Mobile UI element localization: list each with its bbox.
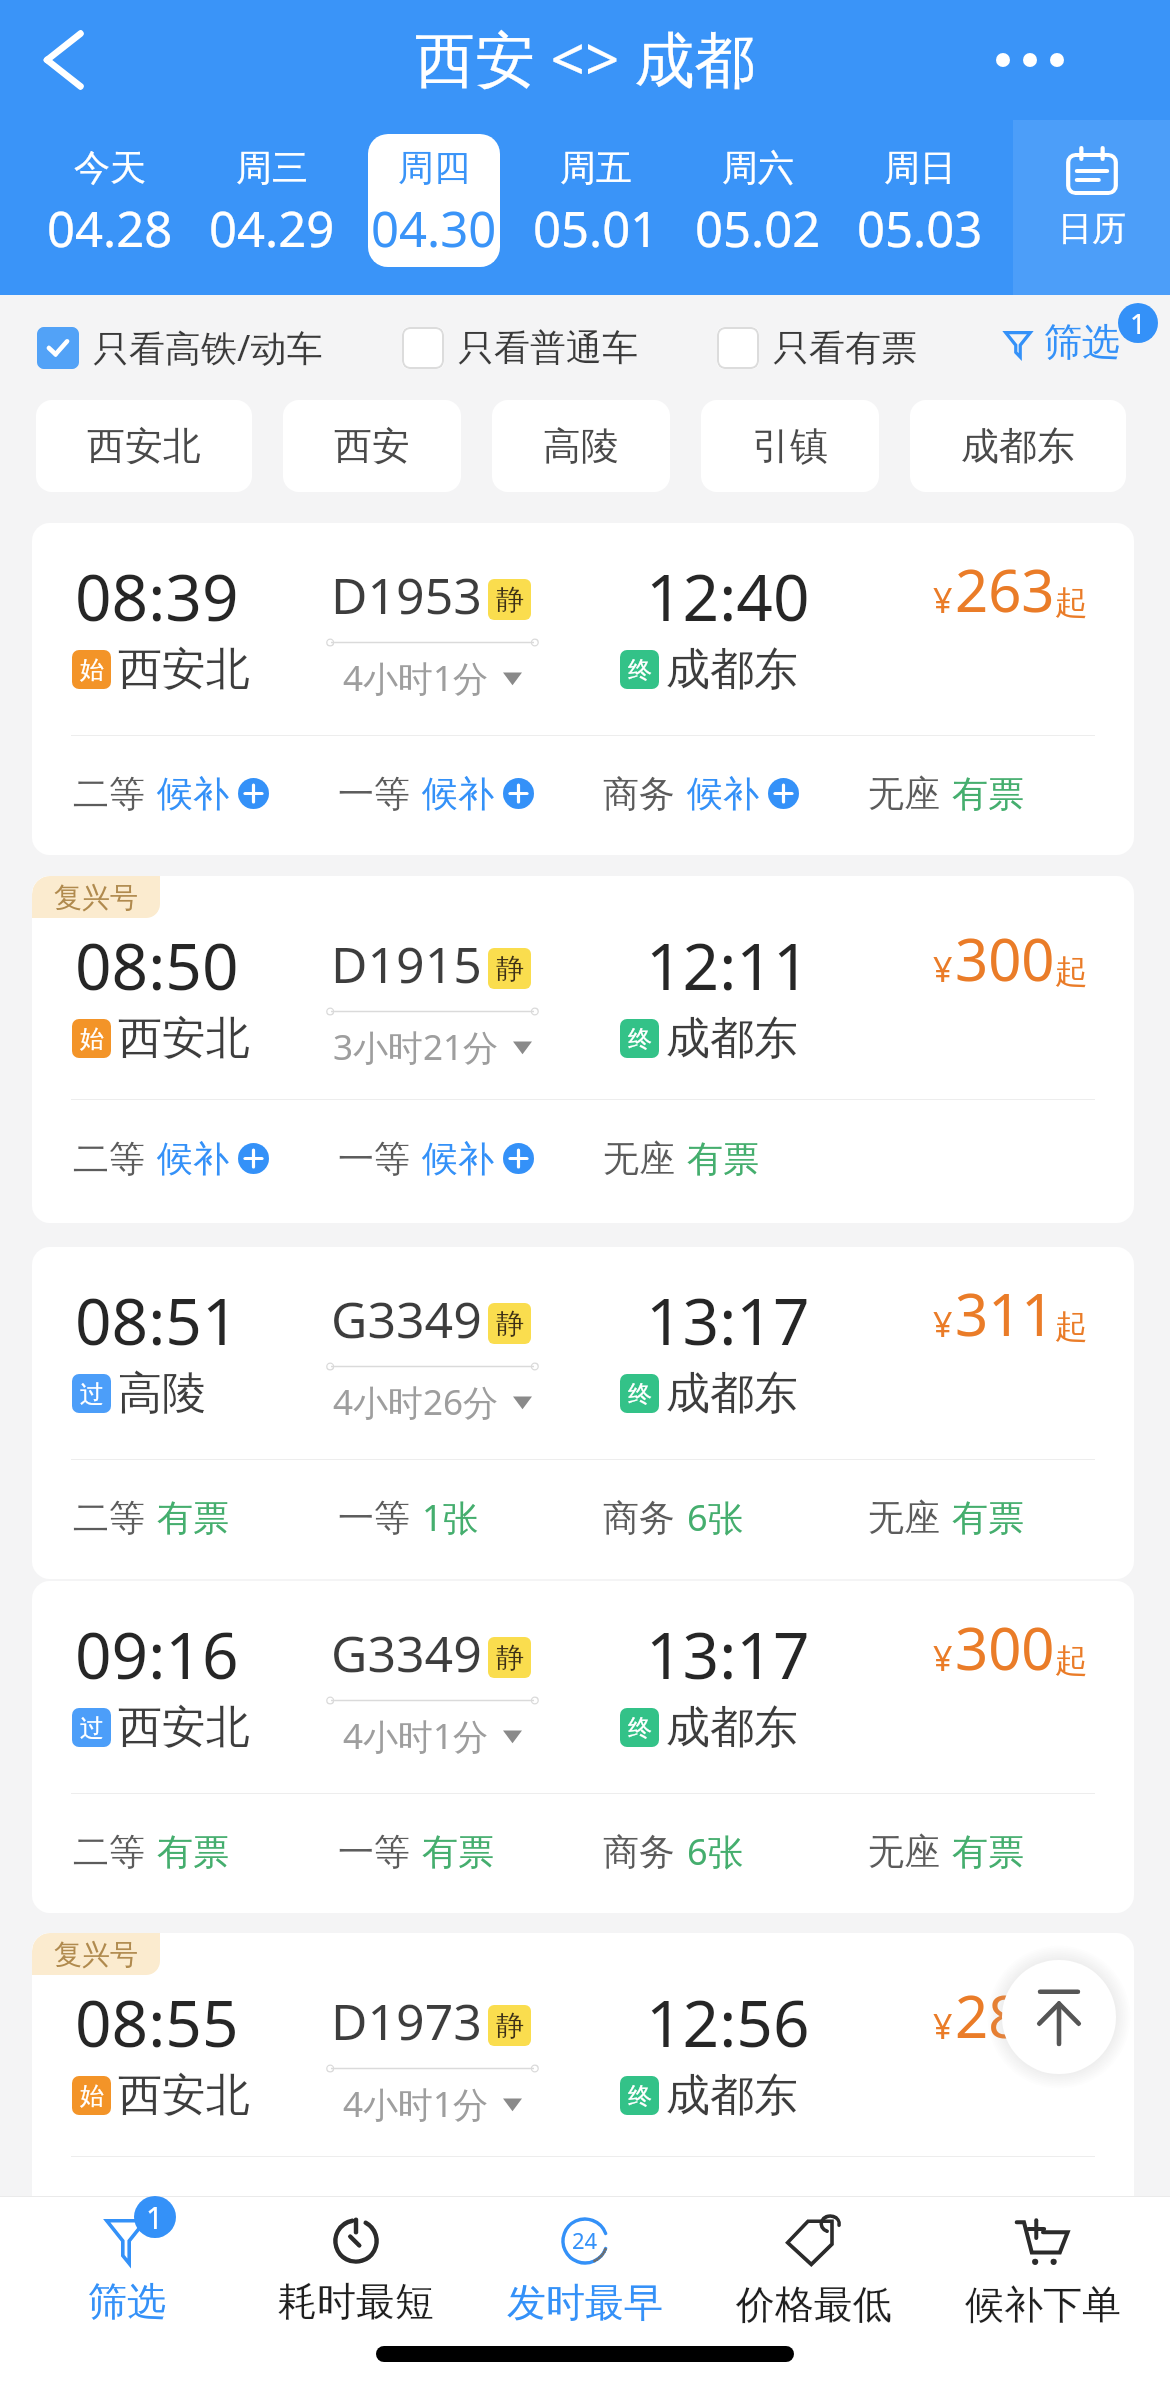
button[interactable]: Add waitlist order — [238, 1143, 269, 1174]
staticText: 候补 — [422, 771, 494, 816]
staticText: 起 — [1055, 1640, 1088, 1682]
staticText: 有票 — [687, 2193, 759, 2238]
staticText: 一等 — [338, 1495, 410, 1540]
staticText: 1 — [1130, 304, 1147, 342]
button[interactable]: 周六 — [692, 134, 824, 267]
button[interactable]: 1 — [13, 2197, 241, 2346]
staticText: 4小时26分 — [333, 1378, 499, 1426]
staticText: 300 — [955, 919, 1055, 998]
staticText: 263 — [955, 550, 1055, 629]
staticText: 4小时1分 — [343, 1712, 489, 1760]
staticText: 成都东 — [961, 422, 1075, 470]
button[interactable]: 周五 — [530, 134, 662, 267]
staticText: 成都东 — [666, 1366, 798, 1421]
staticText: 终 — [628, 1024, 652, 1054]
staticText: 西安北 — [118, 2068, 250, 2123]
button[interactable]: 高陵 — [492, 400, 670, 492]
staticText: 起 — [1055, 2008, 1088, 2050]
staticText: 商务 — [603, 771, 675, 816]
button[interactable]: Calendar — [1013, 120, 1170, 295]
button[interactable]: Add waitlist order — [238, 778, 269, 809]
button[interactable]: 西安北 — [36, 400, 252, 492]
staticText: 静 — [496, 1306, 524, 1341]
button[interactable]: 24 — [470, 2197, 699, 2346]
button[interactable]: 引镇 — [701, 400, 879, 492]
staticText: 西安北 — [118, 1700, 250, 1755]
staticText: 起 — [1055, 582, 1088, 624]
staticText: 3小时21分 — [333, 1023, 499, 1071]
staticText: 候补 — [422, 1136, 494, 1181]
staticText: 候补 — [687, 771, 759, 816]
button[interactable]: 候补下单 — [928, 2197, 1157, 2346]
button[interactable]: 周四 — [368, 134, 500, 267]
staticText: 过 — [80, 1713, 104, 1743]
staticText: 发时最早 — [507, 2278, 663, 2327]
button[interactable]: More options — [982, 12, 1078, 108]
staticText: 08:50 — [75, 922, 239, 1009]
staticText: 有票 — [687, 1136, 759, 1181]
staticText: 4小时1分 — [343, 2080, 489, 2128]
button[interactable]: Back — [14, 12, 110, 108]
staticText: 引镇 — [752, 422, 828, 470]
button[interactable]: 耗时最短 — [241, 2197, 470, 2346]
button[interactable]: 价格最低 — [699, 2197, 928, 2346]
staticText: 日历 — [1058, 207, 1126, 250]
staticText: 价格最低 — [736, 2280, 892, 2329]
staticText: 过 — [80, 1379, 104, 1409]
staticText: 候补 — [422, 2193, 494, 2238]
staticText: ¥ — [933, 2003, 953, 2049]
staticText: 13:17 — [646, 1277, 810, 1364]
button[interactable]: 成都东 — [910, 400, 1126, 492]
staticText: 周六 — [722, 145, 794, 190]
button[interactable]: 复兴号 — [32, 876, 1134, 1223]
button[interactable]: 今天 — [44, 134, 176, 267]
staticText: 商务 — [603, 1495, 675, 1540]
staticText: 无座 — [868, 1495, 940, 1540]
staticText: 有票 — [422, 1829, 494, 1874]
staticText: 无座 — [603, 1136, 675, 1181]
staticText: 筛选 — [88, 2277, 166, 2326]
staticText: 08:51 — [75, 1277, 239, 1364]
staticText: 4小时1分 — [343, 654, 489, 702]
staticText: 二等 — [73, 2193, 145, 2238]
staticText: 08:39 — [75, 553, 239, 640]
button[interactable]: 筛选 — [1004, 324, 1120, 372]
staticText: 复兴号 — [54, 880, 138, 915]
staticText: 二等 — [73, 1829, 145, 1874]
staticText: ¥ — [933, 946, 953, 992]
button[interactable]: Add waitlist order — [503, 1143, 534, 1174]
staticText: 12:11 — [646, 922, 810, 1009]
staticText: 一等 — [338, 2193, 410, 2238]
staticText: 静 — [496, 951, 524, 986]
button[interactable]: Add waitlist order — [503, 778, 534, 809]
button[interactable]: 09:16 — [32, 1581, 1134, 1913]
staticText: 有票 — [952, 1495, 1024, 1540]
staticText: 24 — [572, 2225, 598, 2255]
staticText: 13:17 — [646, 1611, 810, 1698]
button[interactable]: Scroll to top — [1002, 1960, 1116, 2074]
button[interactable]: 08:39 — [32, 523, 1134, 855]
button[interactable]: 周日 — [854, 134, 986, 267]
button[interactable]: 西安 — [283, 400, 461, 492]
button[interactable]: 复兴号 — [32, 1933, 1134, 2280]
staticText: 始 — [80, 655, 104, 685]
staticText: 09:16 — [75, 1611, 239, 1698]
button[interactable]: Add waitlist order — [768, 778, 799, 809]
button[interactable]: 08:51 — [32, 1247, 1134, 1579]
staticText: 04.29 — [209, 195, 335, 262]
staticText: 成都东 — [666, 2068, 798, 2123]
staticText: 候补 — [157, 771, 229, 816]
staticText: 12:40 — [646, 553, 810, 640]
button[interactable]: 只看高铁/动车 — [37, 323, 323, 372]
button[interactable]: 只看有票 — [717, 325, 917, 370]
staticText: 始 — [80, 1024, 104, 1054]
staticText: 只看有票 — [773, 325, 917, 370]
staticText: 周四 — [398, 145, 470, 190]
button[interactable]: 周三 — [206, 134, 338, 267]
staticText: 静 — [496, 2008, 524, 2043]
staticText: 始 — [80, 2081, 104, 2111]
staticText: 05.03 — [857, 195, 983, 262]
button[interactable]: 只看普通车 — [402, 325, 638, 370]
